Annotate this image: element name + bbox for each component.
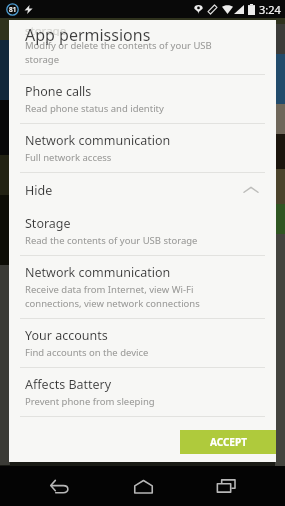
button[interactable]: Affects Battery: [9, 368, 276, 416]
button[interactable]: Recent apps: [202, 466, 250, 506]
staticText: 81: [9, 5, 17, 14]
staticText: storage: [25, 23, 67, 36]
staticText: App permissions: [25, 24, 151, 46]
button[interactable]: Hide: [9, 173, 276, 207]
staticText: connections, view network connections: [25, 297, 200, 310]
button[interactable]: Network communication: [9, 124, 276, 172]
staticText: Receive data from Internet, view Wi-Fi: [25, 283, 194, 296]
button[interactable]: Network communication: [9, 256, 276, 318]
button[interactable]: Phone calls: [9, 75, 276, 123]
other: Collapse: [244, 186, 258, 194]
staticText: Find accounts on the device: [25, 346, 149, 359]
staticText: Full network access: [25, 151, 112, 164]
staticText: ACCEPT: [210, 435, 247, 449]
staticText: Network communication: [25, 264, 171, 281]
staticText: storage: [25, 53, 59, 66]
button[interactable]: Home: [119, 466, 167, 506]
staticText: Read the contents of your USB storage: [25, 234, 198, 247]
staticText: Your accounts: [25, 327, 108, 344]
staticText: 3:24: [259, 2, 281, 17]
staticText: Affects Battery: [25, 376, 112, 393]
staticText: Network communication: [25, 132, 171, 149]
button[interactable]: Back: [35, 466, 83, 506]
button[interactable]: ACCEPT: [180, 430, 276, 454]
button[interactable]: Storage: [9, 207, 276, 255]
staticText: Hide: [25, 182, 53, 199]
staticText: Phone calls: [25, 83, 92, 100]
staticText: Modify or delete the contents of your US…: [25, 39, 212, 52]
staticText: Read phone status and identity: [25, 102, 164, 115]
button[interactable]: Your accounts: [9, 319, 276, 367]
staticText: Prevent phone from sleeping: [25, 395, 155, 408]
staticText: Storage: [25, 215, 71, 232]
